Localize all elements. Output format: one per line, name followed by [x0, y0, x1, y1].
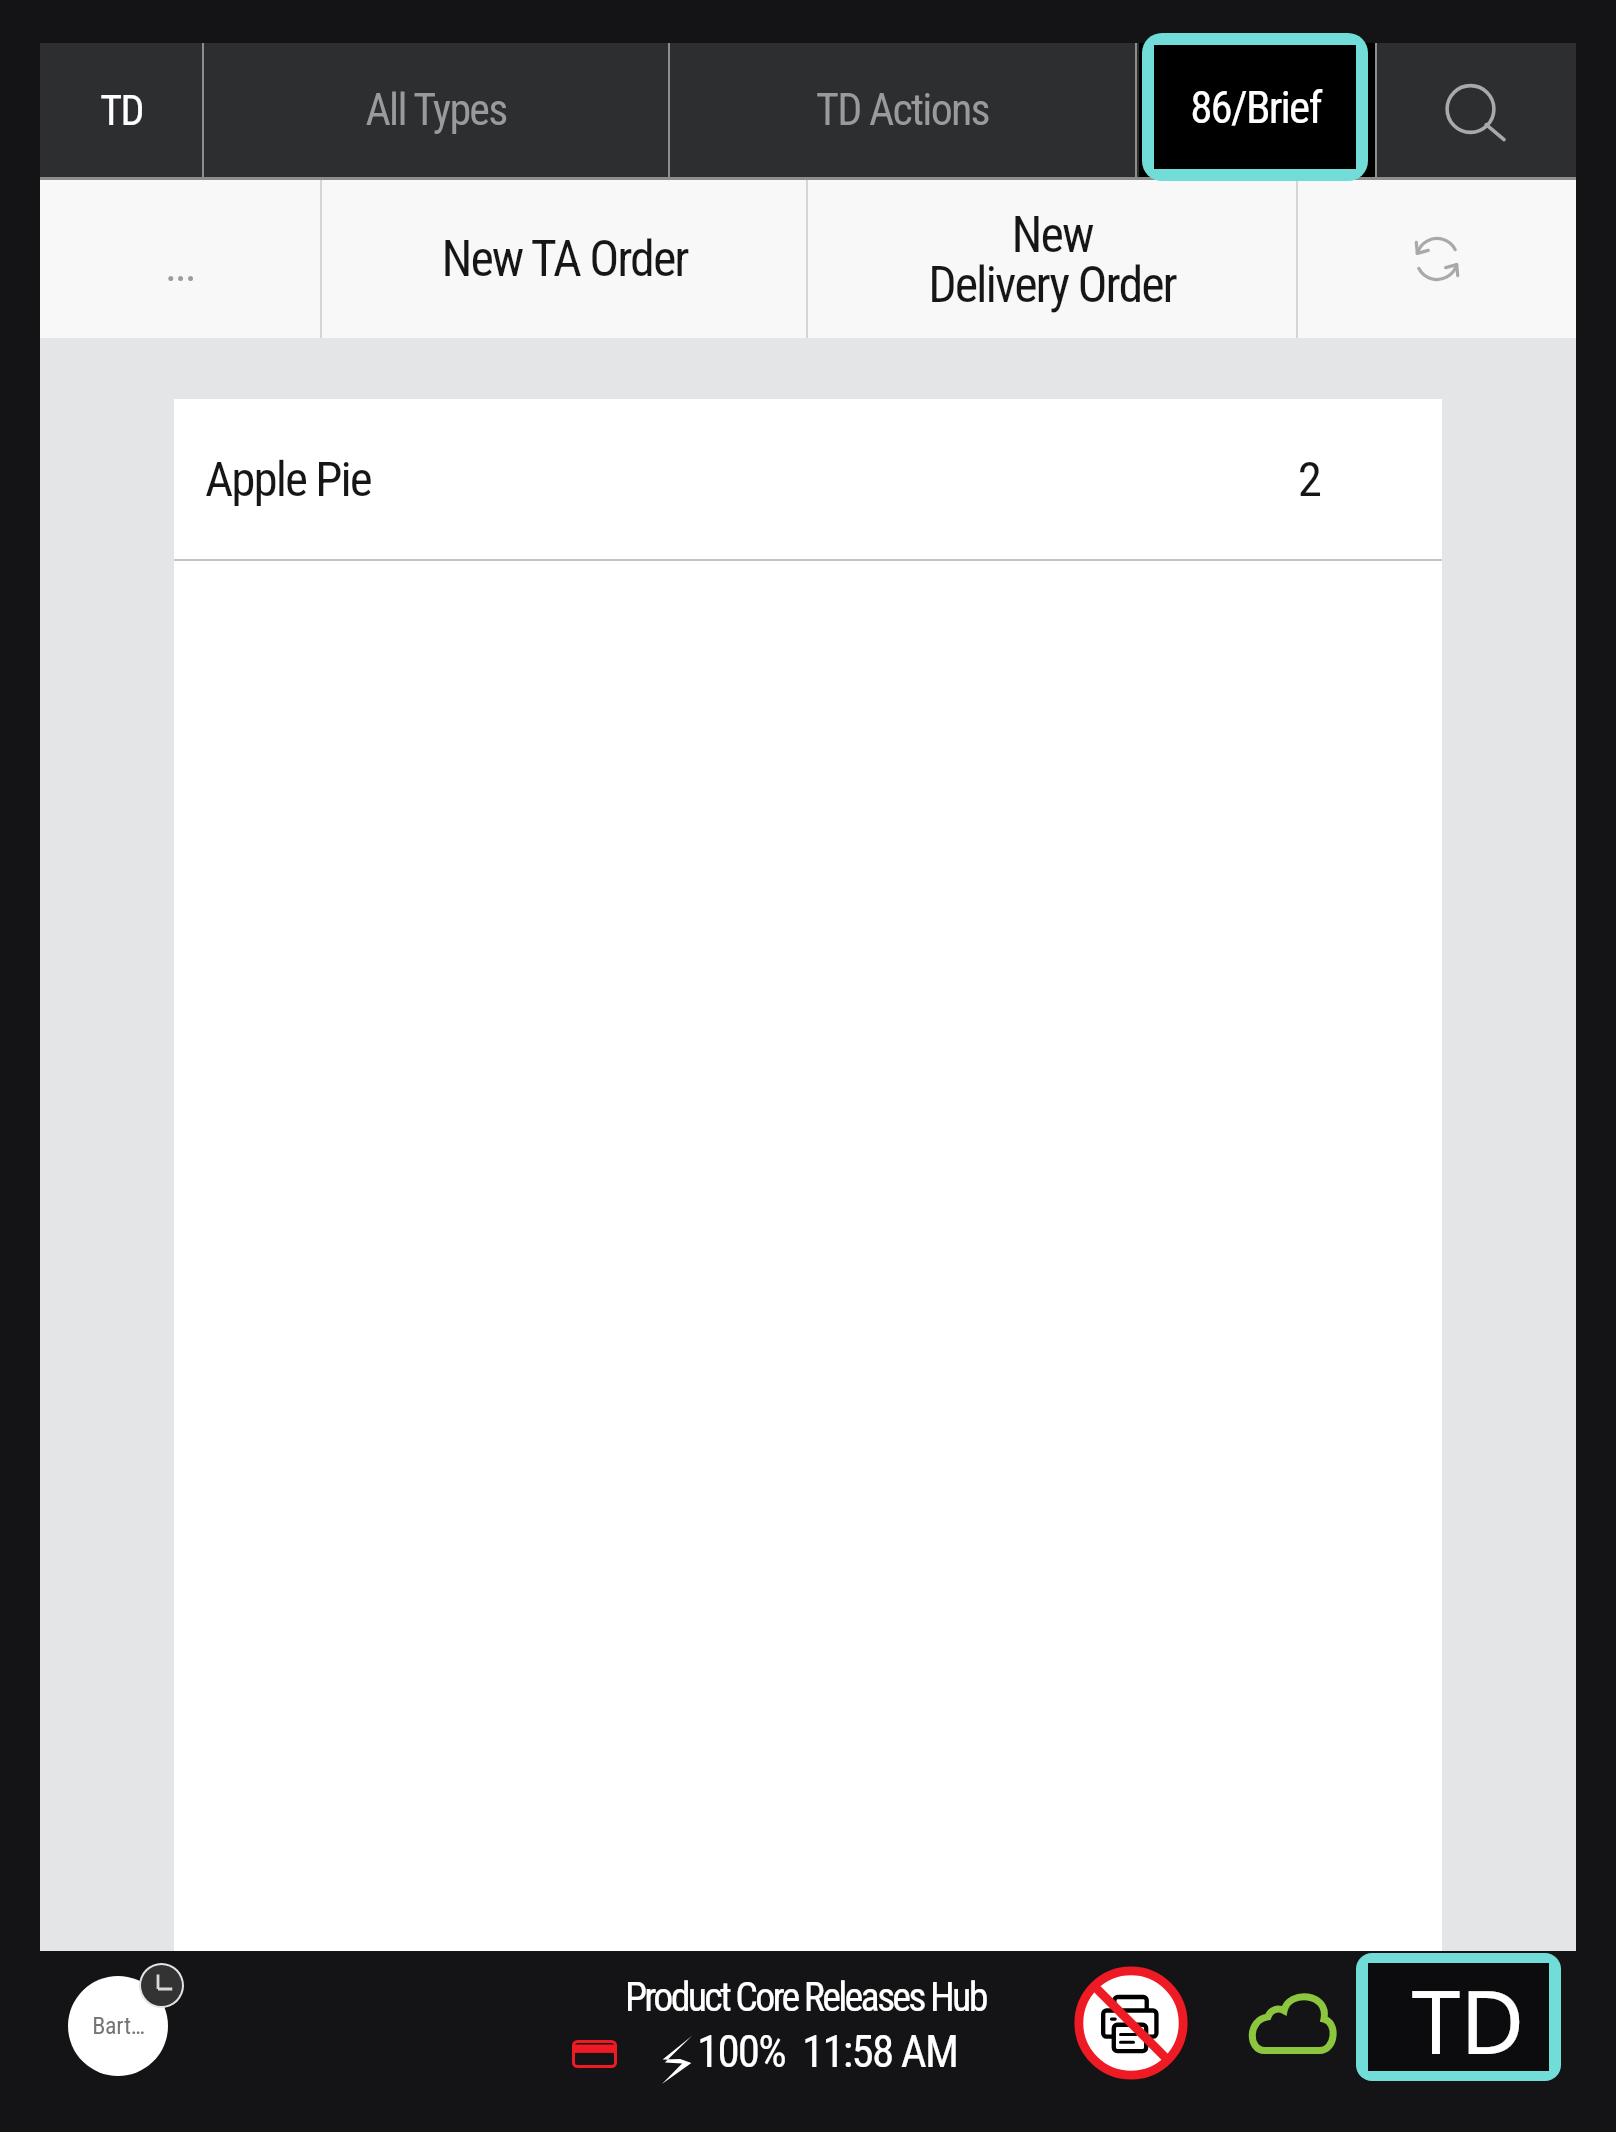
staticText: Apple Pie: [205, 451, 371, 508]
staticText: All Types: [365, 84, 507, 136]
button[interactable]: All Types: [204, 43, 668, 177]
staticText: TD: [100, 86, 143, 135]
button[interactable]: TD: [40, 43, 202, 177]
button[interactable]: Search: [1379, 43, 1576, 177]
button[interactable]: Apple Pie: [174, 399, 1442, 559]
staticText: ...: [165, 240, 195, 292]
button[interactable]: TD: [1368, 1963, 1549, 2071]
button[interactable]: 86/Brief: [1154, 45, 1356, 169]
button[interactable]: Printing disabled: [1074, 1966, 1188, 2080]
staticText: Product Core Releases Hub: [625, 1974, 986, 2021]
staticText: New TA Order: [441, 230, 688, 289]
button[interactable]: Refresh: [1298, 180, 1576, 338]
button[interactable]: New TA Order: [322, 180, 806, 338]
button[interactable]: ...: [40, 180, 320, 338]
staticText: 2: [1297, 451, 1320, 508]
staticText: Bart…: [92, 2012, 145, 2040]
button[interactable]: New Delivery Order: [808, 180, 1296, 338]
staticText: 86/Brief: [1190, 81, 1321, 134]
button[interactable]: TD Actions: [670, 43, 1135, 177]
staticText: 100% 11:58 AM: [697, 2025, 958, 2078]
button[interactable]: Bart…: [68, 1976, 168, 2076]
staticText: TD Actions: [816, 84, 989, 136]
button[interactable]: Cloud connected: [1247, 1990, 1337, 2054]
staticText: TD: [1411, 1960, 1525, 2068]
staticText: New Delivery Order: [928, 206, 1176, 314]
